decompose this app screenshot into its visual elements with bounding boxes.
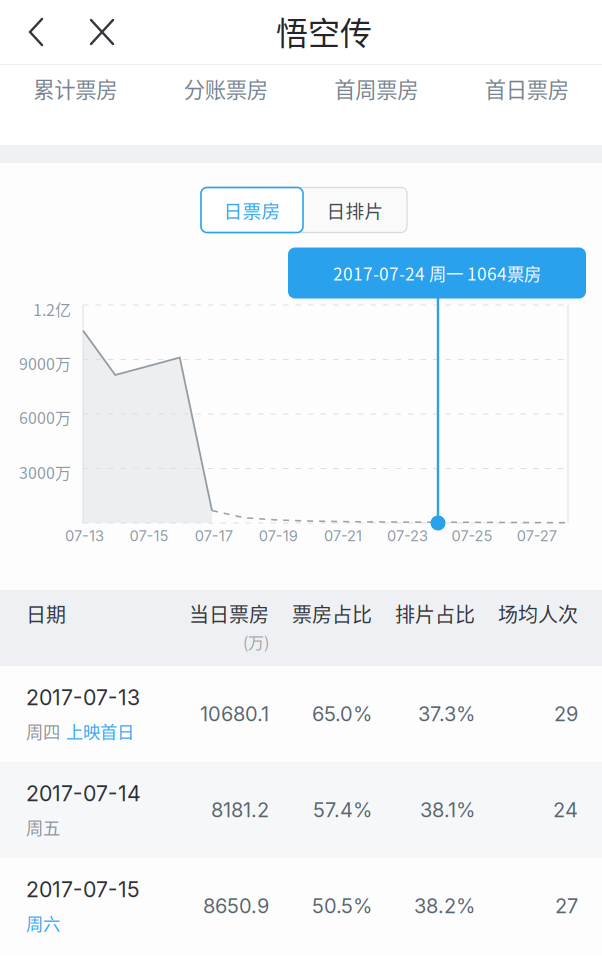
button[interactable]: Close [88, 14, 116, 50]
staticText: 24 [553, 798, 578, 822]
staticText: 07-21 [324, 527, 362, 545]
staticText: 首日票房 [485, 73, 569, 104]
staticText: 周四 [26, 718, 60, 743]
staticText: 07-19 [259, 527, 298, 545]
staticText: 周五 [26, 814, 60, 839]
staticText: 07-17 [195, 527, 233, 545]
staticText: 2017-07-13 [26, 684, 140, 710]
staticText: 8650.9 [203, 894, 269, 918]
staticText: 8181.2 [211, 798, 269, 822]
button[interactable]: 分账票房 [150, 65, 301, 145]
staticText: 排片占比 [395, 599, 475, 628]
staticText: 07-13 [65, 527, 104, 545]
staticText: 29 [554, 702, 578, 726]
button[interactable]: 累计票房 [0, 65, 150, 145]
staticText: 3000万 [19, 460, 71, 484]
staticText: 07-25 [452, 527, 493, 545]
staticText: 2017-07-24 周一 1064票房 [333, 260, 541, 286]
button[interactable]: 日票房 [201, 187, 303, 232]
staticText: 当日票房 [189, 599, 269, 628]
staticText: 9000万 [19, 351, 71, 375]
button[interactable]: 日排片 [303, 187, 407, 232]
staticText: 27 [555, 894, 578, 918]
button[interactable]: 2017-07-13 [0, 666, 602, 762]
staticText: 57.4% [313, 798, 372, 822]
staticText: 2017-07-15 [26, 876, 140, 902]
staticText: (万) [243, 630, 269, 653]
button[interactable]: 首周票房 [301, 65, 451, 145]
staticText: 6000万 [19, 405, 71, 429]
staticText: 07-15 [130, 527, 169, 545]
staticText: 周六 [26, 910, 60, 935]
staticText: 累计票房 [33, 73, 117, 104]
staticText: 50.5% [312, 894, 372, 918]
staticText: 65.0% [312, 702, 372, 726]
staticText: 首周票房 [334, 73, 418, 104]
staticText: 日票房 [223, 196, 280, 223]
button[interactable]: Back [28, 14, 52, 50]
staticText: 日排片 [326, 196, 383, 223]
button[interactable]: 2017-07-14 [0, 762, 602, 858]
staticText: 分账票房 [184, 73, 268, 104]
staticText: 10680.1 [200, 702, 269, 726]
staticText: 07-23 [387, 527, 428, 545]
staticText: 37.3% [418, 702, 475, 726]
staticText: 日期 [26, 599, 66, 628]
staticText: 票房占比 [292, 599, 372, 628]
staticText: 38.1% [420, 798, 475, 822]
staticText: 悟空传 [276, 8, 372, 54]
button[interactable]: 首日票房 [451, 65, 602, 145]
staticText: 2017-07-14 [26, 780, 141, 806]
staticText: 07-27 [517, 527, 557, 545]
staticText: 场均人次 [498, 599, 578, 628]
staticText: 上映首日 [66, 718, 134, 743]
staticText: 1.2亿 [33, 297, 71, 321]
staticText: 38.2% [414, 894, 475, 918]
button[interactable]: 2017-07-15 [0, 858, 602, 954]
